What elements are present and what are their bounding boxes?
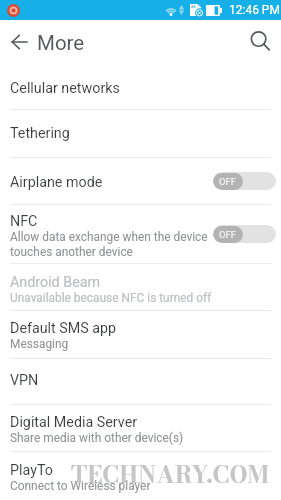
staticText: Android Beam: [10, 274, 101, 291]
staticText: VPN: [10, 372, 39, 389]
button[interactable]: Back: [4, 23, 34, 61]
staticText: Messaging: [10, 337, 69, 351]
button[interactable]: Toggle off: [213, 172, 276, 190]
button[interactable]: Tethering: [0, 110, 281, 157]
button[interactable]: Search: [242, 23, 278, 59]
button[interactable]: VPN: [0, 359, 281, 404]
button[interactable]: PlayTo: [0, 452, 281, 500]
staticText: Allow data exchange when the device touc…: [10, 230, 208, 259]
staticText: Default SMS app: [10, 320, 117, 337]
button[interactable]: Android Beam: [0, 264, 281, 310]
staticText: Tethering: [10, 125, 70, 142]
staticText: Connect to Wireless player: [10, 479, 151, 493]
button[interactable]: Default SMS app: [0, 311, 281, 358]
staticText: PlayTo: [10, 462, 53, 479]
staticText: 12:46 PM: [229, 3, 280, 17]
staticText: OFF: [219, 176, 237, 187]
staticText: Airplane mode: [10, 174, 103, 191]
staticText: Digital Media Server: [10, 414, 138, 431]
button[interactable]: Airplane mode: [0, 158, 281, 204]
staticText: Share media with other device(s): [10, 431, 184, 445]
staticText: Unavailable because NFC is turned off: [10, 291, 212, 305]
staticText: Cellular networks: [10, 80, 120, 97]
staticText: More: [37, 31, 85, 55]
staticText: NFC: [10, 213, 38, 230]
staticText: OFF: [219, 229, 237, 240]
button[interactable]: Cellular networks: [0, 64, 281, 109]
button[interactable]: Toggle off: [213, 225, 276, 243]
button[interactable]: NFC: [0, 205, 281, 263]
button[interactable]: Digital Media Server: [0, 405, 281, 451]
staticText: TECHNARY.COM: [71, 457, 269, 493]
